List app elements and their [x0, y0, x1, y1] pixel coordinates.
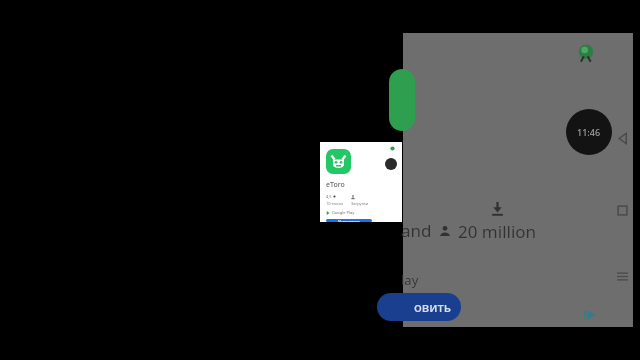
button[interactable]: Ad choices [583, 308, 597, 322]
staticText: Google Play [332, 210, 355, 215]
staticText: Установить [338, 219, 360, 222]
button[interactable]: Back [614, 130, 631, 147]
button[interactable]: Установить [326, 219, 372, 222]
button[interactable]: Account [320, 142, 402, 222]
button[interactable]: Recent apps [614, 268, 631, 285]
button[interactable]: Clock 11:46 [566, 109, 612, 155]
staticText: Загрузки [351, 201, 369, 206]
button[interactable]: Home [614, 202, 631, 219]
staticText: lay [401, 271, 419, 289]
other: Play Protect [575, 43, 597, 65]
staticText: овить [414, 298, 452, 316]
staticText: 10 тысяч [326, 201, 344, 206]
button[interactable]: овить [377, 293, 461, 321]
staticText: and [401, 219, 432, 242]
staticText: 4,5 [326, 194, 332, 199]
staticText: eToro [326, 180, 345, 190]
staticText: 11:46 [577, 126, 601, 138]
button[interactable]: Account [385, 158, 397, 170]
staticText: 20 million [458, 220, 537, 243]
